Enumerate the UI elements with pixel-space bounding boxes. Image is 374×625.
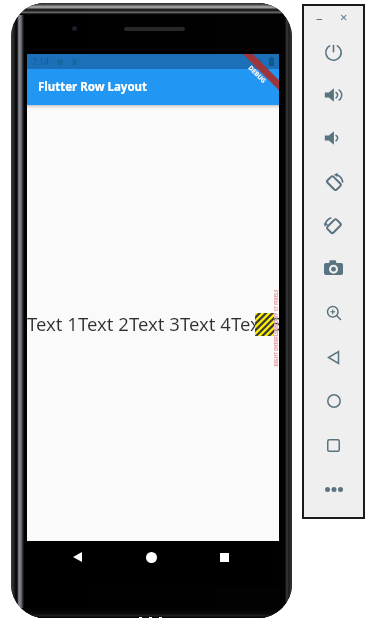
button[interactable]: Recent apps [316,434,351,456]
button[interactable]: Home [146,552,157,563]
button[interactable]: Back [73,552,82,562]
button[interactable]: More [316,478,351,500]
other: More [325,487,343,492]
other: Power [325,44,342,61]
button[interactable]: Power [316,41,351,63]
other: Back [327,350,340,365]
button[interactable]: Screenshot [316,256,351,278]
staticText: Flutter Row Layout [38,79,148,95]
other: Screenshot [324,260,343,275]
button[interactable]: Rotate right [316,213,351,235]
button[interactable]: Home [316,390,351,412]
other: Rotate right [323,214,344,235]
other: Zoom [326,305,342,321]
staticText: Text 1 [27,311,78,336]
staticText: DEBUG [247,63,269,85]
button[interactable]: Rotate left [316,170,351,192]
button[interactable]: Volume down [316,127,351,149]
staticText: Text 5 [231,311,279,336]
other: Recent apps [327,439,340,452]
button[interactable]: Back [316,346,351,368]
staticText: Text 4 [180,311,231,336]
button[interactable]: Volume up [316,84,351,106]
staticText: RIGHT OVERFLOWED BY 17 PIXELS [272,289,278,366]
button[interactable]: – [316,9,323,27]
button[interactable]: Zoom [316,302,351,324]
staticText: 7:14 [32,56,49,68]
other: Volume down [324,130,343,146]
other: Volume up [324,87,343,103]
staticText: Text 2 [78,311,129,336]
other: Home [327,394,341,408]
button[interactable]: × [340,8,348,26]
other: Rotate left [323,171,344,192]
staticText: Text 3 [129,311,180,336]
